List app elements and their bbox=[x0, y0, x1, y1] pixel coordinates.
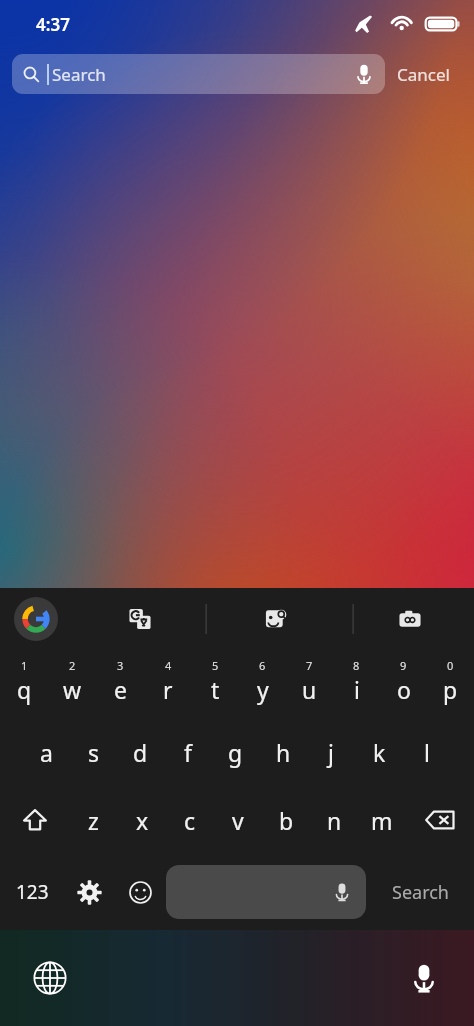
button[interactable]: Search with Lens bbox=[256, 599, 296, 639]
button[interactable]: Change language bbox=[22, 950, 78, 1006]
staticText: d bbox=[133, 737, 148, 768]
staticText: 2 bbox=[69, 658, 76, 673]
staticText: p bbox=[443, 674, 458, 705]
button[interactable]: m bbox=[358, 786, 406, 854]
staticText: e bbox=[114, 674, 127, 705]
button[interactable]: g bbox=[211, 718, 259, 786]
button[interactable]: Settings bbox=[64, 854, 115, 930]
button[interactable]: h bbox=[259, 718, 307, 786]
staticText: 7 bbox=[306, 658, 313, 673]
button[interactable]: 6 bbox=[239, 650, 286, 718]
staticText: q bbox=[17, 674, 32, 705]
staticText: y bbox=[257, 674, 269, 705]
staticText: 3 bbox=[117, 658, 124, 673]
staticText: Cancel bbox=[397, 63, 450, 86]
staticText: x bbox=[136, 805, 149, 836]
button[interactable]: 7 bbox=[286, 650, 333, 718]
staticText: z bbox=[88, 805, 99, 836]
button[interactable]: Emoji bbox=[115, 854, 166, 930]
staticText: t bbox=[211, 674, 220, 705]
staticText: 6 bbox=[259, 658, 266, 673]
staticText: b bbox=[279, 805, 294, 836]
staticText: 4:37 bbox=[36, 13, 70, 36]
staticText: k bbox=[373, 737, 386, 768]
staticText: u bbox=[302, 674, 317, 705]
button[interactable]: Search bbox=[366, 854, 474, 930]
button[interactable]: 1 bbox=[0, 650, 48, 718]
staticText: h bbox=[276, 737, 291, 768]
button[interactable]: 4 bbox=[144, 650, 192, 718]
button[interactable]: c bbox=[166, 786, 214, 854]
staticText: i bbox=[354, 674, 360, 705]
staticText: 4 bbox=[165, 658, 172, 673]
button[interactable]: Search bbox=[12, 54, 385, 94]
staticText: a bbox=[40, 737, 53, 768]
button[interactable]: Stickers bbox=[390, 599, 430, 639]
button[interactable]: Voice input bbox=[396, 950, 452, 1006]
staticText: m bbox=[371, 805, 393, 836]
button[interactable]: Cancel bbox=[385, 57, 462, 92]
button[interactable]: Translate bbox=[120, 599, 160, 639]
button[interactable]: 5 bbox=[192, 650, 239, 718]
staticText: n bbox=[327, 805, 342, 836]
staticText: 123 bbox=[16, 879, 49, 905]
staticText: 9 bbox=[400, 658, 407, 673]
button[interactable]: b bbox=[262, 786, 310, 854]
staticText: v bbox=[232, 805, 244, 836]
staticText: o bbox=[397, 674, 411, 705]
staticText: r bbox=[163, 674, 173, 705]
button[interactable]: 8 bbox=[333, 650, 380, 718]
staticText: Search bbox=[392, 880, 449, 905]
staticText: w bbox=[63, 674, 82, 705]
button[interactable]: f bbox=[164, 718, 211, 786]
staticText: j bbox=[328, 737, 334, 768]
staticText: 0 bbox=[447, 658, 454, 673]
button[interactable]: j bbox=[307, 718, 355, 786]
staticText: f bbox=[184, 737, 192, 768]
staticText: 5 bbox=[212, 658, 219, 673]
staticText: 8 bbox=[353, 658, 360, 673]
button[interactable]: d bbox=[117, 718, 164, 786]
button[interactable]: Voice search bbox=[353, 63, 375, 85]
button[interactable]: x bbox=[118, 786, 166, 854]
button[interactable]: n bbox=[310, 786, 358, 854]
button[interactable]: z bbox=[69, 786, 118, 854]
staticText: l bbox=[424, 737, 430, 768]
staticText: c bbox=[184, 805, 196, 836]
button[interactable]: Space bbox=[166, 865, 366, 919]
button[interactable]: Shift bbox=[0, 786, 69, 854]
button[interactable]: 2 bbox=[48, 650, 96, 718]
button[interactable]: s bbox=[70, 718, 117, 786]
staticText: g bbox=[228, 737, 243, 768]
staticText: s bbox=[88, 737, 100, 768]
button[interactable]: 0 bbox=[427, 650, 474, 718]
button[interactable]: l bbox=[403, 718, 451, 786]
staticText: 1 bbox=[21, 658, 28, 673]
button[interactable]: 3 bbox=[96, 650, 144, 718]
button[interactable]: a bbox=[23, 718, 70, 786]
staticText: Search bbox=[52, 63, 106, 86]
button[interactable]: Backspace bbox=[406, 786, 474, 854]
button[interactable]: 9 bbox=[380, 650, 427, 718]
button[interactable]: v bbox=[214, 786, 262, 854]
button[interactable]: k bbox=[355, 718, 403, 786]
button[interactable]: 123 bbox=[0, 854, 64, 930]
button[interactable]: Google bbox=[14, 597, 58, 641]
